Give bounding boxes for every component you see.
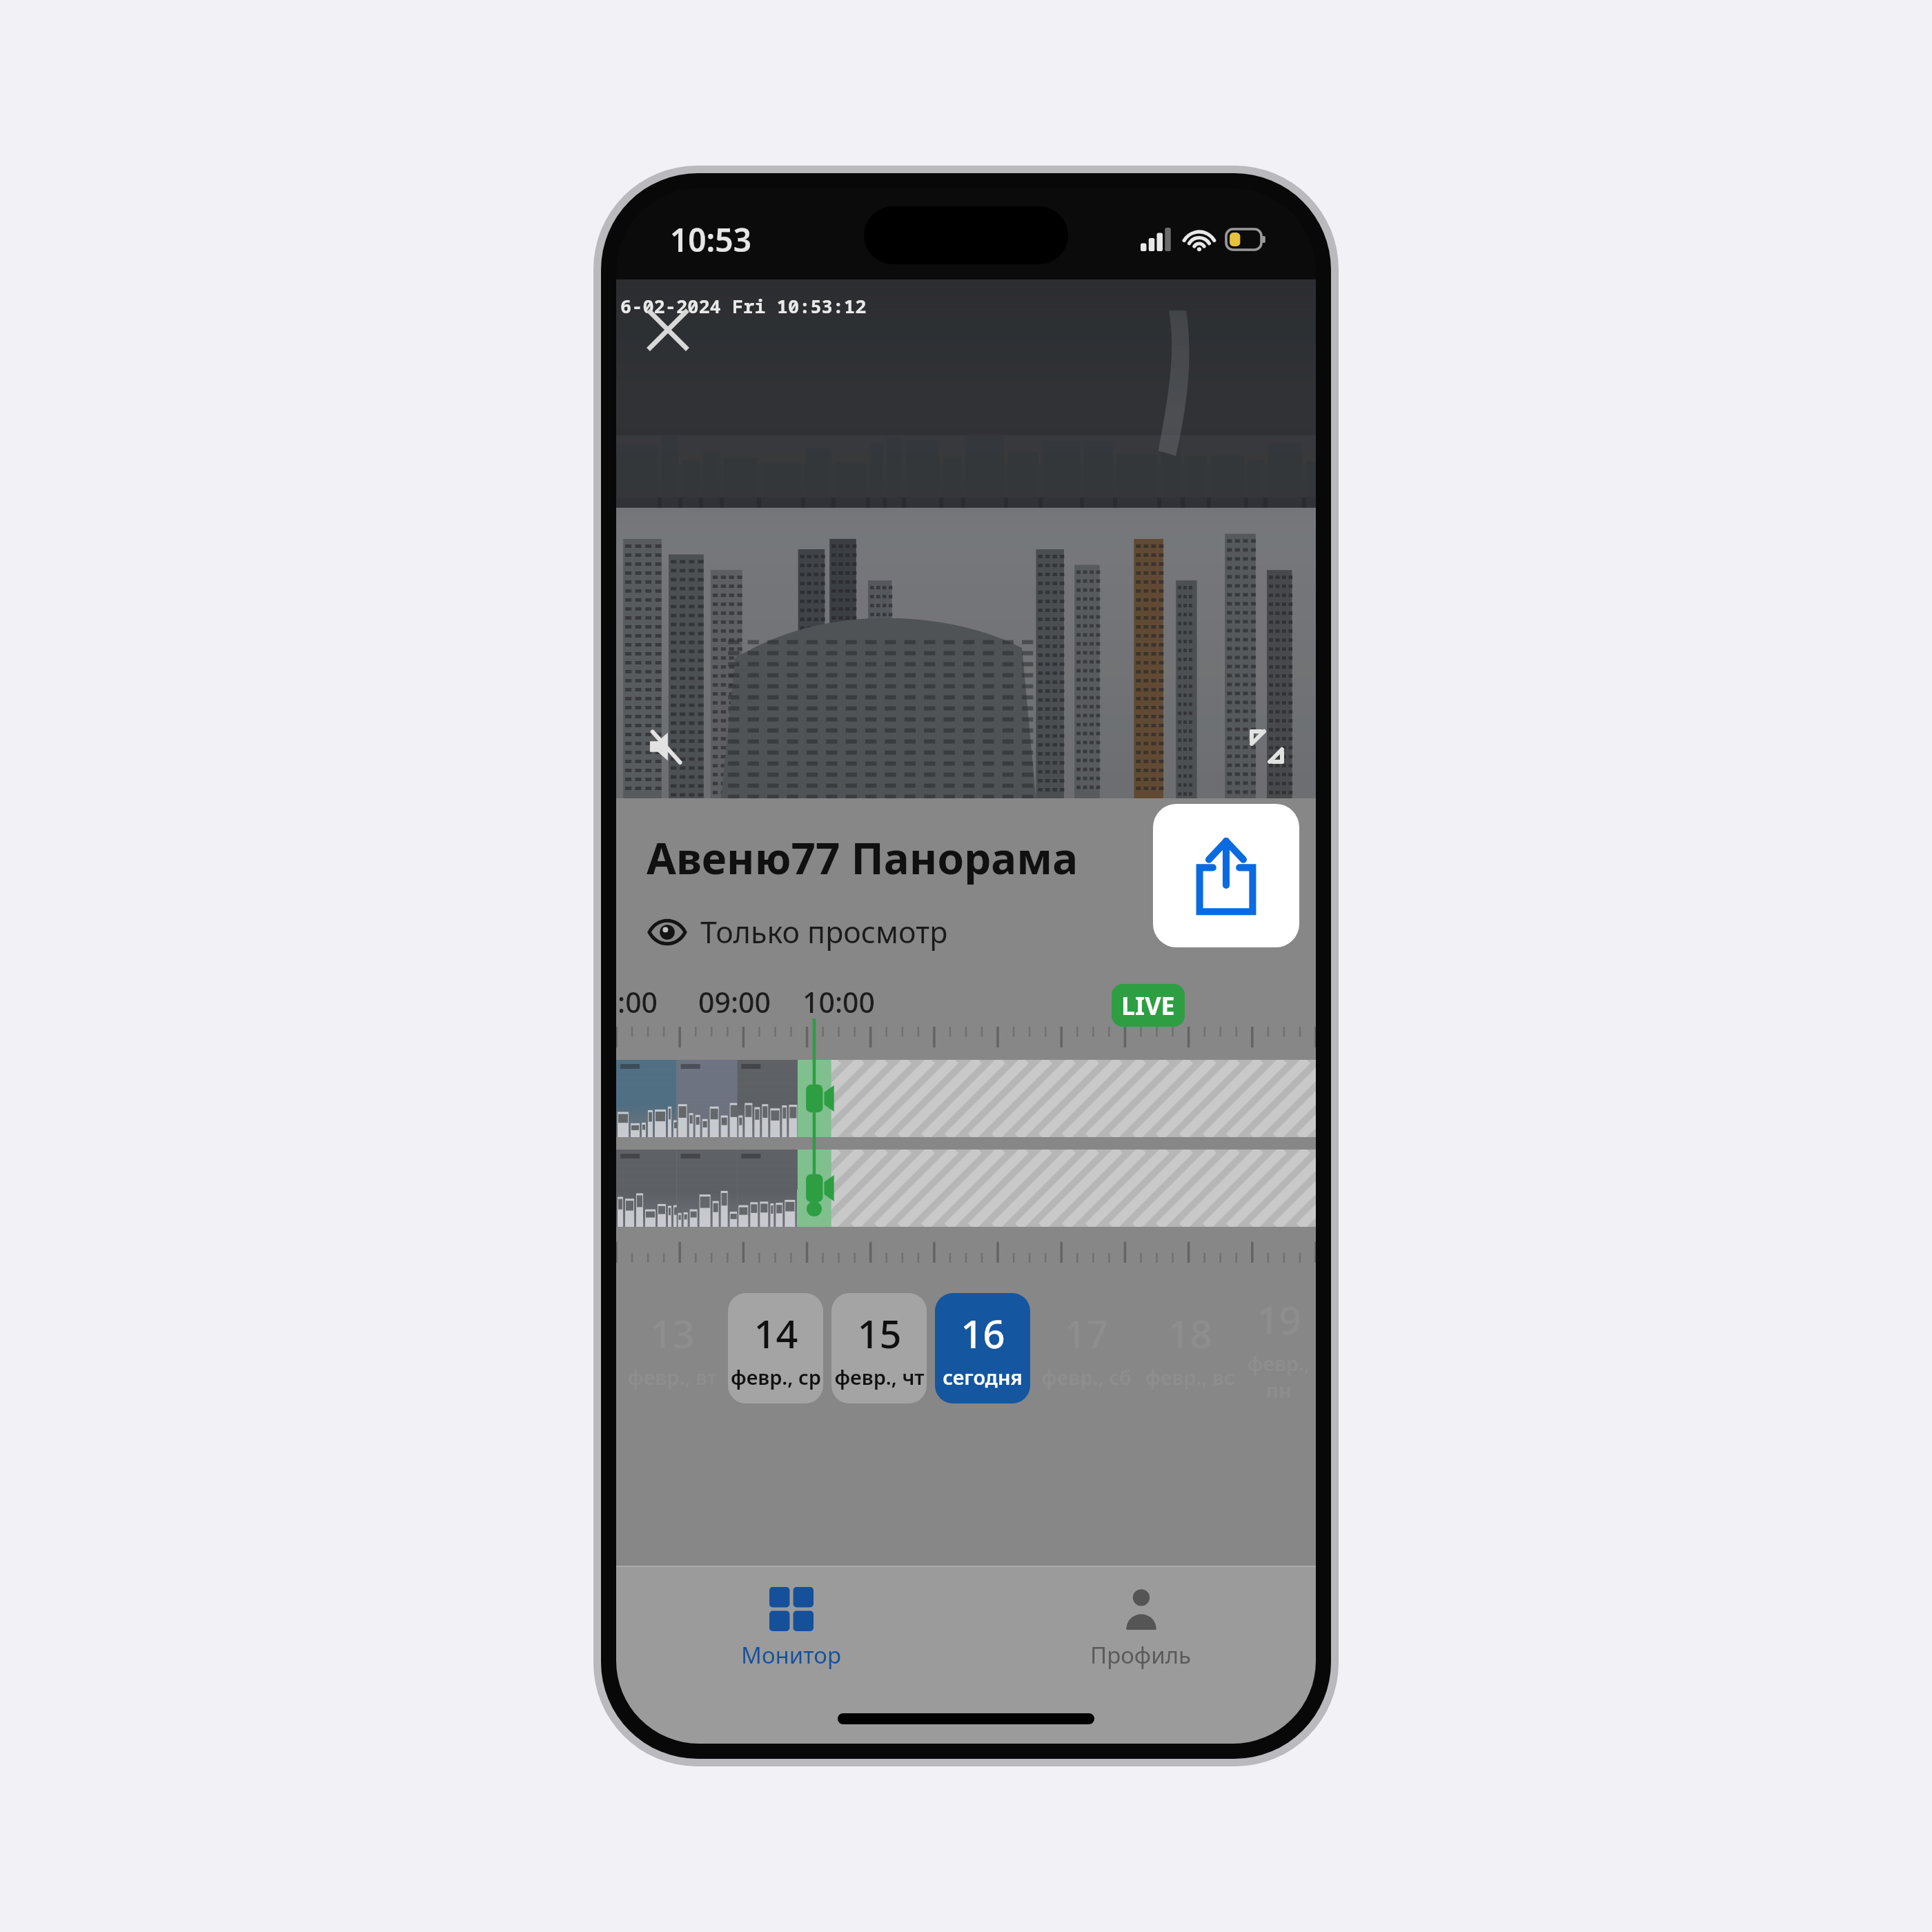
button[interactable]: Mute — [640, 721, 691, 772]
button[interactable]: Close — [641, 303, 695, 357]
button[interactable]: 14 — [728, 1293, 823, 1403]
staticText: 10:00 — [802, 983, 875, 1021]
button[interactable]: Share — [1153, 804, 1299, 947]
button[interactable] — [616, 1060, 1316, 1137]
staticText: 10:53 — [670, 218, 751, 262]
button[interactable] — [616, 1150, 1316, 1227]
staticText: :00 — [618, 983, 658, 1021]
staticText: LIVE — [1121, 989, 1175, 1023]
staticText: 16 — [960, 1307, 1005, 1359]
button[interactable]: Только просмотр — [649, 911, 948, 952]
staticText: Монитор — [741, 1639, 841, 1670]
staticText: 6-02-2024 Fri 10:53:12 — [620, 293, 867, 319]
staticText: февр., ср — [731, 1363, 821, 1390]
staticText: февр., чт — [834, 1363, 925, 1390]
button[interactable]: 15 — [831, 1293, 927, 1403]
staticText: сегодня — [943, 1363, 1023, 1390]
button[interactable]: Профиль — [966, 1567, 1316, 1690]
staticText: 14 — [753, 1307, 798, 1359]
button[interactable]: Монитор — [616, 1567, 966, 1690]
staticText: 09:00 — [698, 983, 771, 1021]
button[interactable]: Fullscreen — [1241, 721, 1292, 772]
staticText: Профиль — [1090, 1639, 1192, 1670]
staticText: 15 — [857, 1307, 902, 1359]
staticText: Авеню77 Панорама — [647, 829, 1078, 887]
button[interactable]: 16 — [935, 1293, 1030, 1403]
staticText: Только просмотр — [700, 911, 948, 952]
button[interactable]: LIVE — [1112, 984, 1185, 1027]
